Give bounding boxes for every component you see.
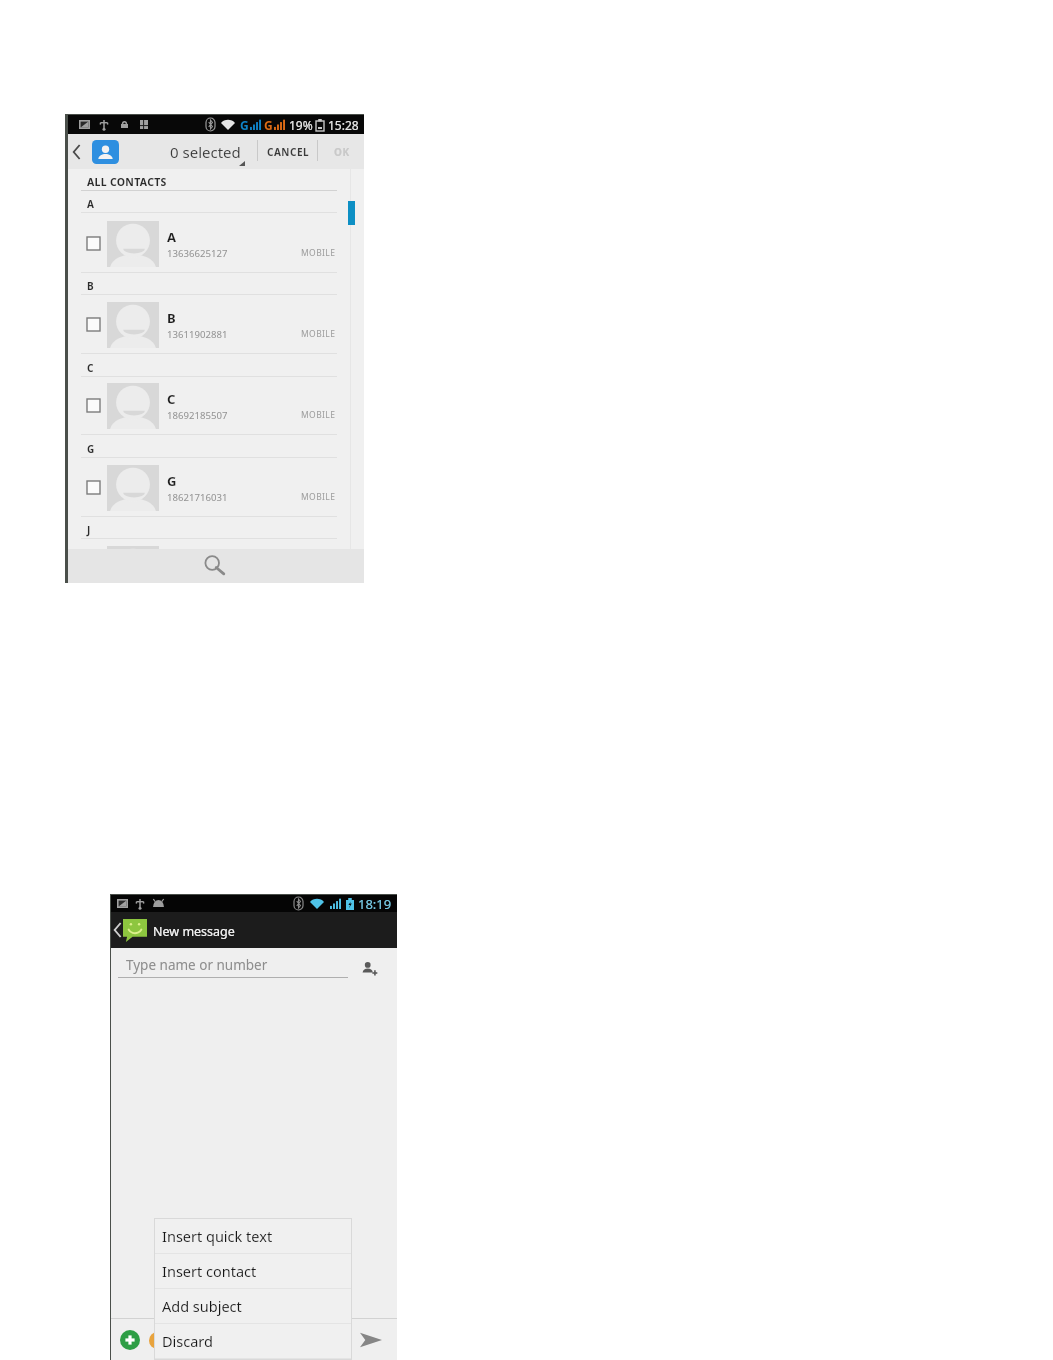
staticText: A xyxy=(87,197,95,211)
staticText: OK xyxy=(334,145,350,159)
staticText: New message xyxy=(153,923,235,940)
button[interactable]: 0 selected xyxy=(137,134,273,169)
staticText: MOBILE xyxy=(301,328,336,340)
button[interactable]: Navigate up xyxy=(68,134,122,169)
button[interactable]: Insert quick text xyxy=(155,1219,351,1253)
button[interactable]: Select K xyxy=(68,539,364,549)
staticText: G xyxy=(87,442,95,456)
button[interactable]: Insert emoticon xyxy=(144,1327,170,1353)
staticText: 0 selected xyxy=(170,142,241,162)
staticText: CANCEL xyxy=(267,145,310,159)
staticText: 18692185507 xyxy=(167,409,228,422)
staticText: G xyxy=(264,117,273,133)
button[interactable]: Select C xyxy=(87,399,100,412)
staticText: C xyxy=(87,361,94,375)
staticText: MOBILE xyxy=(301,409,336,421)
button[interactable]: Navigate up xyxy=(111,912,153,948)
button[interactable]: Select A xyxy=(68,214,364,273)
staticText: B xyxy=(167,309,176,327)
button[interactable]: Add subject xyxy=(155,1289,351,1323)
staticText: Insert contact xyxy=(162,1261,257,1281)
staticText: Add subject xyxy=(162,1296,242,1316)
staticText: 18:19 xyxy=(358,895,392,912)
staticText: Insert quick text xyxy=(162,1226,273,1246)
staticText: 13611902881 xyxy=(167,328,228,341)
button[interactable]: Insert contact xyxy=(155,1254,351,1288)
button[interactable]: Pick contact xyxy=(354,953,384,983)
button[interactable]: Add attachment xyxy=(117,1327,143,1353)
staticText: MOBILE xyxy=(301,491,336,503)
staticText: J xyxy=(87,523,91,537)
staticText: C xyxy=(167,390,176,408)
button[interactable]: Select A xyxy=(87,237,100,250)
staticText: Discard xyxy=(162,1331,213,1351)
button[interactable]: Select G xyxy=(68,458,364,517)
staticText: 18621716031 xyxy=(167,491,228,504)
staticText: 13636625127 xyxy=(167,247,228,260)
staticText: 15:28 xyxy=(328,117,359,133)
button[interactable]: Send xyxy=(354,1323,388,1357)
staticText: A xyxy=(167,228,176,246)
staticText: G xyxy=(240,117,249,133)
button[interactable]: Select B xyxy=(68,295,364,354)
button[interactable]: Select C xyxy=(68,376,364,435)
button[interactable]: Discard xyxy=(155,1324,351,1358)
staticText: G xyxy=(167,472,177,490)
staticText: Type name or number xyxy=(126,956,268,974)
staticText: ALL CONTACTS xyxy=(87,175,167,189)
button[interactable]: Select G xyxy=(87,481,100,494)
button[interactable]: OK xyxy=(318,134,364,169)
button[interactable]: Select B xyxy=(87,318,100,331)
button[interactable]: Search xyxy=(68,549,364,583)
staticText: MOBILE xyxy=(301,247,336,259)
button[interactable]: CANCEL xyxy=(258,134,318,169)
staticText: 19% xyxy=(289,117,313,133)
staticText: B xyxy=(87,279,94,293)
